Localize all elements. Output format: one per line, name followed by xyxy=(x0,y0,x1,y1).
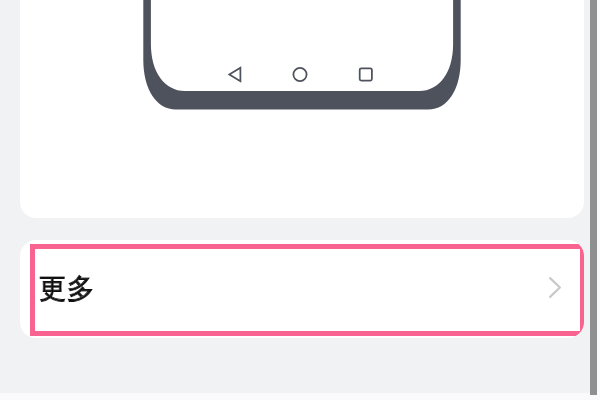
button[interactable]: 更多 xyxy=(20,240,584,338)
button[interactable]: Navigation gesture illustration xyxy=(20,0,584,218)
staticText: 更多 xyxy=(39,271,95,306)
staticText: 更多 xyxy=(39,271,95,306)
